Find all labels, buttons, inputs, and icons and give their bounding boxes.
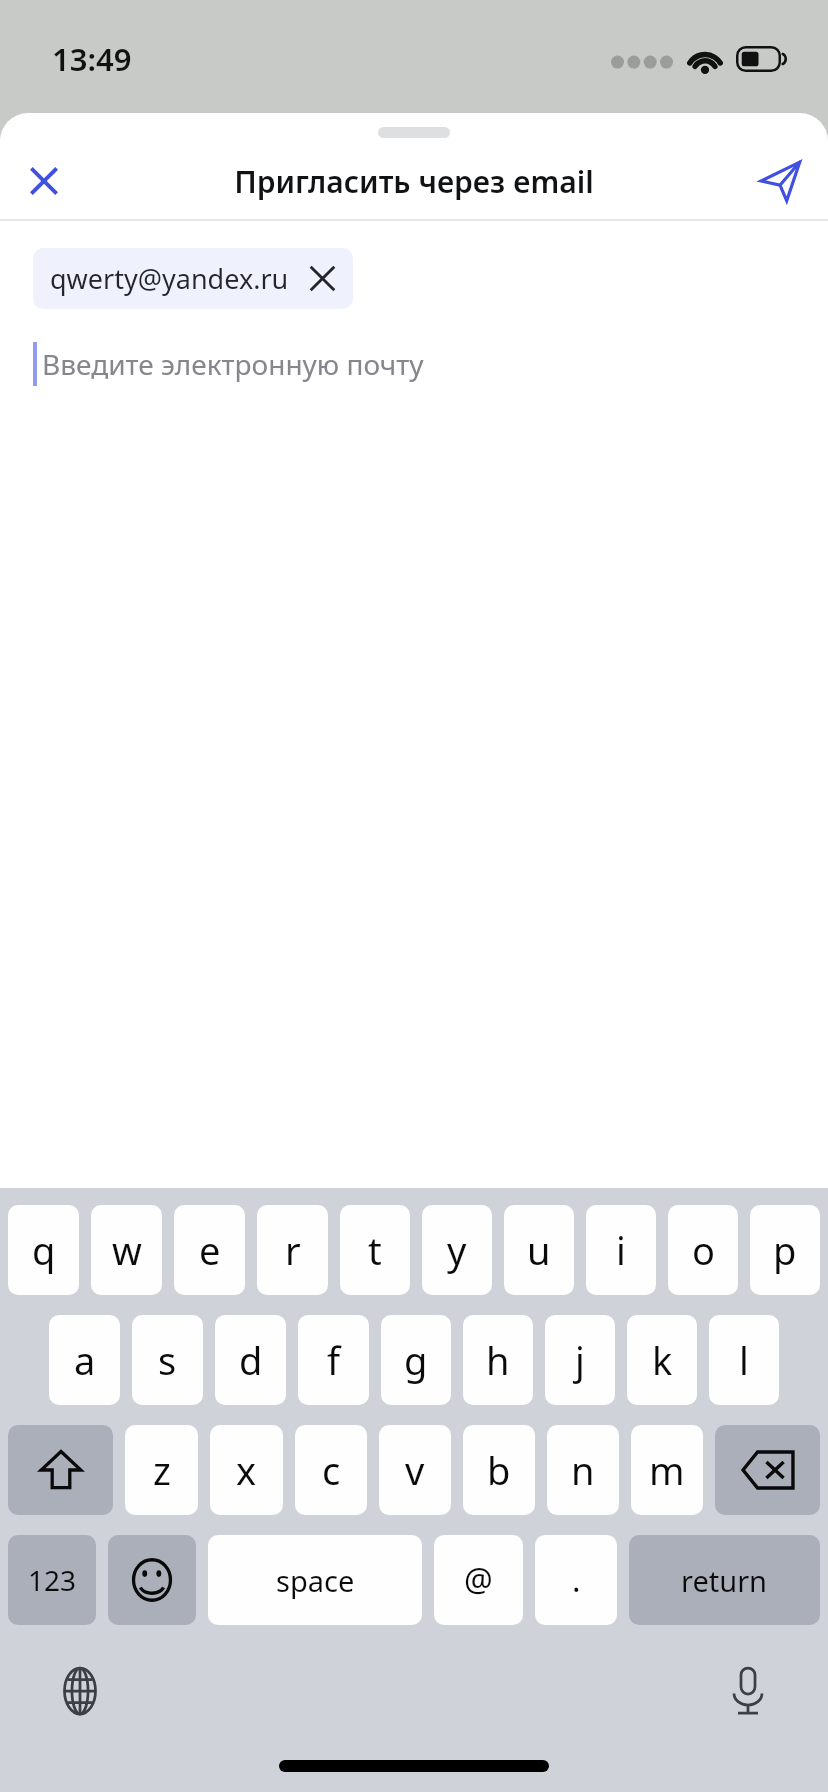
staticText: t xyxy=(368,1224,382,1276)
button[interactable]: @ xyxy=(434,1535,523,1625)
staticText: i xyxy=(616,1224,626,1276)
staticText: @ xyxy=(464,1558,493,1602)
button[interactable]: Отправить xyxy=(742,143,818,219)
button[interactable]: q xyxy=(8,1205,79,1295)
other: Shift xyxy=(39,1448,83,1492)
staticText: g xyxy=(404,1334,428,1386)
staticText: . xyxy=(572,1558,581,1602)
button[interactable]: m xyxy=(631,1425,703,1515)
button[interactable]: v xyxy=(379,1425,451,1515)
button[interactable]: a xyxy=(49,1315,120,1405)
button[interactable]: Голосовой ввод xyxy=(710,1653,786,1729)
staticText: k xyxy=(652,1334,673,1386)
staticText: j xyxy=(575,1334,585,1386)
button[interactable]: return xyxy=(629,1535,820,1625)
staticText: space xyxy=(276,1561,355,1600)
staticText: f xyxy=(327,1334,341,1386)
button[interactable]: z xyxy=(125,1425,198,1515)
button[interactable]: t xyxy=(340,1205,410,1295)
staticText: Пригласить через email xyxy=(234,161,594,202)
button[interactable]: s xyxy=(132,1315,203,1405)
button[interactable]: b xyxy=(463,1425,535,1515)
button[interactable]: Закрыть xyxy=(8,145,80,217)
button[interactable]: k xyxy=(627,1315,697,1405)
staticText: x xyxy=(236,1444,257,1496)
button[interactable]: l xyxy=(709,1315,779,1405)
button[interactable]: qwerty@yandex.ru xyxy=(33,248,353,309)
button[interactable]: w xyxy=(91,1205,162,1295)
staticText: y xyxy=(447,1224,467,1276)
staticText: 123 xyxy=(28,1561,77,1599)
staticText: r xyxy=(285,1224,301,1276)
button[interactable]: n xyxy=(547,1425,619,1515)
staticText: u xyxy=(527,1224,551,1276)
staticText: w xyxy=(112,1224,142,1276)
button[interactable]: p xyxy=(750,1205,820,1295)
staticText: e xyxy=(199,1224,221,1276)
button[interactable]: i xyxy=(586,1205,656,1295)
button[interactable]: y xyxy=(422,1205,492,1295)
staticText: z xyxy=(153,1444,171,1496)
staticText: v xyxy=(405,1444,425,1496)
staticText: s xyxy=(158,1334,177,1386)
button[interactable]: h xyxy=(463,1315,533,1405)
button[interactable]: j xyxy=(545,1315,615,1405)
button[interactable]: Удалить xyxy=(715,1425,820,1515)
staticText: o xyxy=(692,1224,715,1276)
staticText: c xyxy=(322,1444,341,1496)
button[interactable]: space xyxy=(208,1535,422,1625)
button[interactable]: . xyxy=(535,1535,617,1625)
button[interactable]: u xyxy=(504,1205,574,1295)
button[interactable]: o xyxy=(668,1205,738,1295)
button[interactable]: r xyxy=(257,1205,328,1295)
other: Эмодзи xyxy=(130,1558,174,1602)
staticText: q xyxy=(32,1224,56,1276)
staticText: h xyxy=(486,1334,510,1386)
button[interactable]: Эмодзи xyxy=(108,1535,196,1625)
button[interactable]: x xyxy=(210,1425,283,1515)
button[interactable]: Введите электронную почту xyxy=(0,338,828,390)
button[interactable]: 123 xyxy=(8,1535,96,1625)
staticText: m xyxy=(649,1444,685,1496)
other: Удалить xyxy=(742,1450,794,1490)
button[interactable]: e xyxy=(174,1205,245,1295)
button[interactable]: d xyxy=(215,1315,286,1405)
staticText: b xyxy=(487,1444,511,1496)
button[interactable]: f xyxy=(298,1315,369,1405)
staticText: l xyxy=(739,1334,749,1386)
staticText: qwerty@yandex.ru xyxy=(50,260,289,297)
staticText: return xyxy=(681,1561,768,1600)
button[interactable]: Shift xyxy=(8,1425,113,1515)
staticText: d xyxy=(239,1334,263,1386)
staticText: n xyxy=(571,1444,595,1496)
button[interactable]: c xyxy=(295,1425,367,1515)
button[interactable]: g xyxy=(381,1315,451,1405)
staticText: a xyxy=(74,1334,96,1386)
staticText: Введите электронную почту xyxy=(42,345,424,383)
button[interactable]: Сменить язык xyxy=(42,1653,118,1729)
staticText: p xyxy=(773,1224,797,1276)
staticText: 13:49 xyxy=(52,38,132,80)
